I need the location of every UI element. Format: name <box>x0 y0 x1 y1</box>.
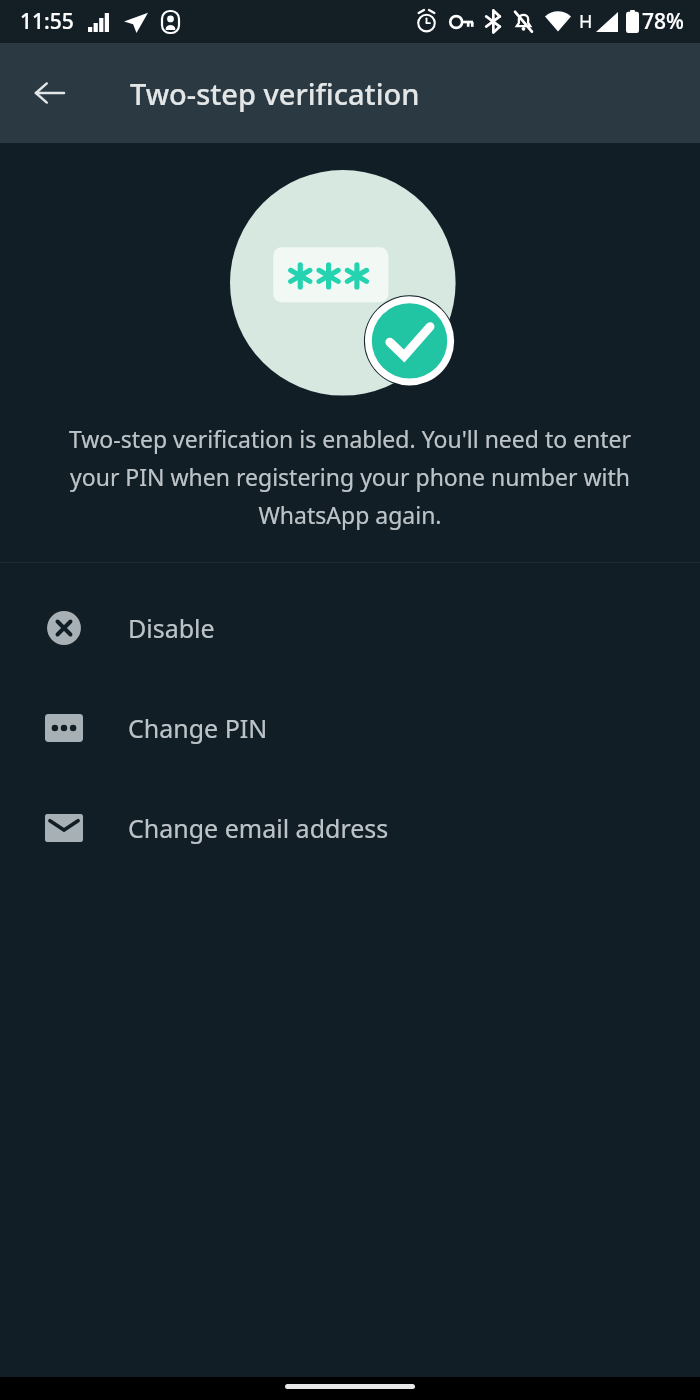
staticText: 11:55 <box>20 7 74 36</box>
staticText: H <box>579 9 593 34</box>
button[interactable]: Change email address <box>0 778 700 878</box>
button[interactable]: Back <box>18 61 82 125</box>
staticText: Disable <box>128 611 215 645</box>
staticText: Two-step verification <box>130 74 420 113</box>
button[interactable]: Change PIN <box>0 678 700 778</box>
staticText: Two-step verification is enabled. You'll… <box>52 423 648 531</box>
staticText: Change PIN <box>128 711 268 745</box>
staticText: Change email address <box>128 811 389 845</box>
staticText: 78% <box>642 7 684 36</box>
button[interactable]: Disable <box>0 578 700 678</box>
